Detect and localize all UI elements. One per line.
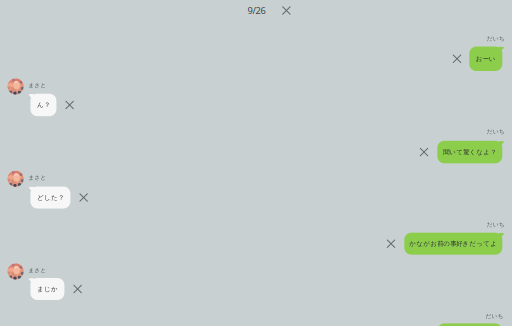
button[interactable]: Delete date <box>282 6 291 15</box>
button[interactable]: Delete message <box>419 148 428 157</box>
staticText: 9/26 <box>247 4 265 17</box>
button[interactable]: Delete message <box>452 54 461 63</box>
button[interactable]: かながお前の事好きだってよ <box>404 233 502 255</box>
staticText: ん？ <box>37 101 50 109</box>
button[interactable]: 聞いて驚くなよ？ <box>437 141 502 163</box>
button[interactable]: まじか <box>30 278 64 300</box>
button[interactable]: Delete message <box>386 239 395 248</box>
button[interactable]: Delete message <box>65 100 74 109</box>
staticText: まさと <box>28 82 46 89</box>
staticText: かながお前の事好きだってよ <box>409 240 497 248</box>
staticText: おーい <box>476 55 496 63</box>
button[interactable]: おーい <box>469 46 502 71</box>
button[interactable]: Delete message <box>73 284 82 293</box>
staticText: だいち <box>487 35 505 42</box>
staticText: まじか <box>37 285 58 293</box>
button[interactable]: ん？ <box>30 94 56 116</box>
button[interactable]: どした？ <box>30 186 70 208</box>
button[interactable]: Delete message <box>79 193 88 202</box>
staticText: だいち <box>485 313 503 320</box>
staticText: どした？ <box>37 193 64 202</box>
staticText: まさと <box>28 267 46 274</box>
staticText: だいち <box>487 128 505 135</box>
staticText: だいち <box>487 221 505 228</box>
staticText: まさと <box>28 174 46 181</box>
staticText: 聞いて驚くなよ？ <box>443 148 496 156</box>
